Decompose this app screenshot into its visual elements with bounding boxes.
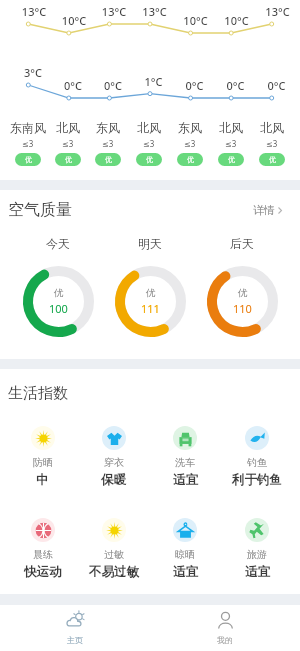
staticText: 穿衣 (104, 456, 124, 469)
button[interactable]: 北风 (210, 120, 251, 166)
staticText: 适宜 (245, 564, 270, 580)
button[interactable]: 防晒 (7, 426, 78, 488)
staticText: 优 (105, 155, 112, 164)
staticText: 北风 (56, 120, 80, 135)
staticText: 优 (25, 155, 32, 164)
staticText: 0°C (256, 78, 297, 93)
button[interactable]: 北风 (48, 120, 88, 166)
button[interactable]: 我的 (150, 605, 300, 651)
staticText: 北风 (137, 120, 161, 135)
staticText: 0°C (93, 78, 133, 93)
staticText: 13°C (14, 4, 54, 19)
staticText: 0°C (215, 78, 256, 93)
staticText: 主页 (67, 635, 83, 645)
button[interactable]: 东风 (169, 120, 210, 166)
staticText: 我的 (217, 635, 233, 645)
staticText: 后天 (230, 236, 254, 251)
staticText: 晨练 (33, 548, 53, 561)
staticText: 13°C (257, 4, 298, 19)
staticText: ≤3 (62, 138, 74, 149)
staticText: 洗车 (175, 456, 195, 469)
staticText: 优 (238, 287, 248, 299)
staticText: 东南风 (10, 120, 46, 135)
staticText: 晾晒 (175, 548, 195, 561)
staticText: 东风 (178, 120, 202, 135)
staticText: 利于钓鱼 (232, 472, 282, 488)
staticText: 优 (269, 155, 276, 164)
staticText: 过敏 (104, 548, 124, 561)
staticText: 不易过敏 (89, 564, 139, 580)
staticText: 快运动 (24, 564, 62, 580)
button[interactable]: 晾晒 (149, 518, 221, 580)
staticText: 保暖 (101, 472, 126, 488)
staticText: 111 (141, 301, 160, 316)
staticText: 防晒 (33, 456, 53, 469)
staticText: 110 (233, 301, 252, 316)
staticText: 3°C (13, 65, 53, 80)
button[interactable]: 晨练 (7, 518, 78, 580)
staticText: 1°C (133, 74, 174, 89)
staticText: 10°C (54, 13, 94, 28)
button[interactable]: 主页 (0, 605, 150, 651)
staticText: 100 (49, 301, 68, 316)
staticText: 详情 (253, 203, 275, 217)
staticText: 明天 (138, 236, 162, 251)
staticText: 优 (54, 287, 64, 299)
staticText: 适宜 (173, 564, 198, 580)
button[interactable]: 穿衣 (78, 426, 149, 488)
staticText: 13°C (94, 4, 134, 19)
staticText: 旅游 (247, 548, 267, 561)
staticText: 优 (187, 155, 194, 164)
staticText: 今天 (46, 236, 70, 251)
staticText: 中 (36, 472, 49, 488)
button[interactable]: 北风 (251, 120, 292, 166)
staticText: ≤3 (22, 138, 34, 149)
button[interactable]: 洗车 (149, 426, 221, 488)
button[interactable]: 东南风 (8, 120, 48, 166)
staticText: 优 (146, 155, 153, 164)
staticText: 0°C (53, 78, 93, 93)
staticText: ≤3 (102, 138, 114, 149)
staticText: 优 (65, 155, 72, 164)
staticText: 北风 (219, 120, 243, 135)
staticText: 10°C (216, 13, 257, 28)
staticText: 东风 (96, 120, 120, 135)
staticText: ≤3 (266, 138, 278, 149)
staticText: ≤3 (225, 138, 237, 149)
staticText: 优 (228, 155, 235, 164)
staticText: ≤3 (184, 138, 196, 149)
staticText: 空气质量 (8, 200, 72, 220)
staticText: 0°C (174, 78, 215, 93)
staticText: 适宜 (173, 472, 198, 488)
staticText: 钓鱼 (247, 456, 267, 469)
staticText: 优 (146, 287, 156, 299)
button[interactable]: 东风 (88, 120, 128, 166)
staticText: 北风 (260, 120, 284, 135)
staticText: 13°C (134, 4, 175, 19)
button[interactable]: 钓鱼 (221, 426, 293, 488)
staticText: 10°C (175, 13, 216, 28)
button[interactable]: 旅游 (221, 518, 293, 580)
staticText: 生活指数 (8, 384, 68, 403)
staticText: ≤3 (143, 138, 155, 149)
button[interactable]: 详情 (249, 200, 286, 220)
button[interactable]: 过敏 (78, 518, 149, 580)
button[interactable]: 北风 (128, 120, 169, 166)
